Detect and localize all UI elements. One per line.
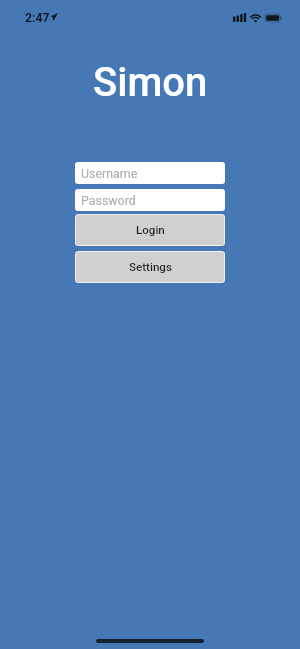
button[interactable]: Password [75,189,225,211]
staticText: Username [81,166,138,181]
staticText: 2:47 [25,11,50,25]
other: Cellular signal strength [233,13,246,22]
other: Location services active [51,13,58,21]
staticText: Settings [129,260,172,274]
other: Wi-Fi connected [250,13,261,22]
staticText: Simon [93,59,208,106]
button[interactable]: Settings [76,252,224,282]
other: Battery full [265,14,282,22]
staticText: Login [136,223,165,237]
staticText: Password [81,193,136,208]
button[interactable]: Login [76,215,224,245]
button[interactable]: Username [75,162,225,184]
